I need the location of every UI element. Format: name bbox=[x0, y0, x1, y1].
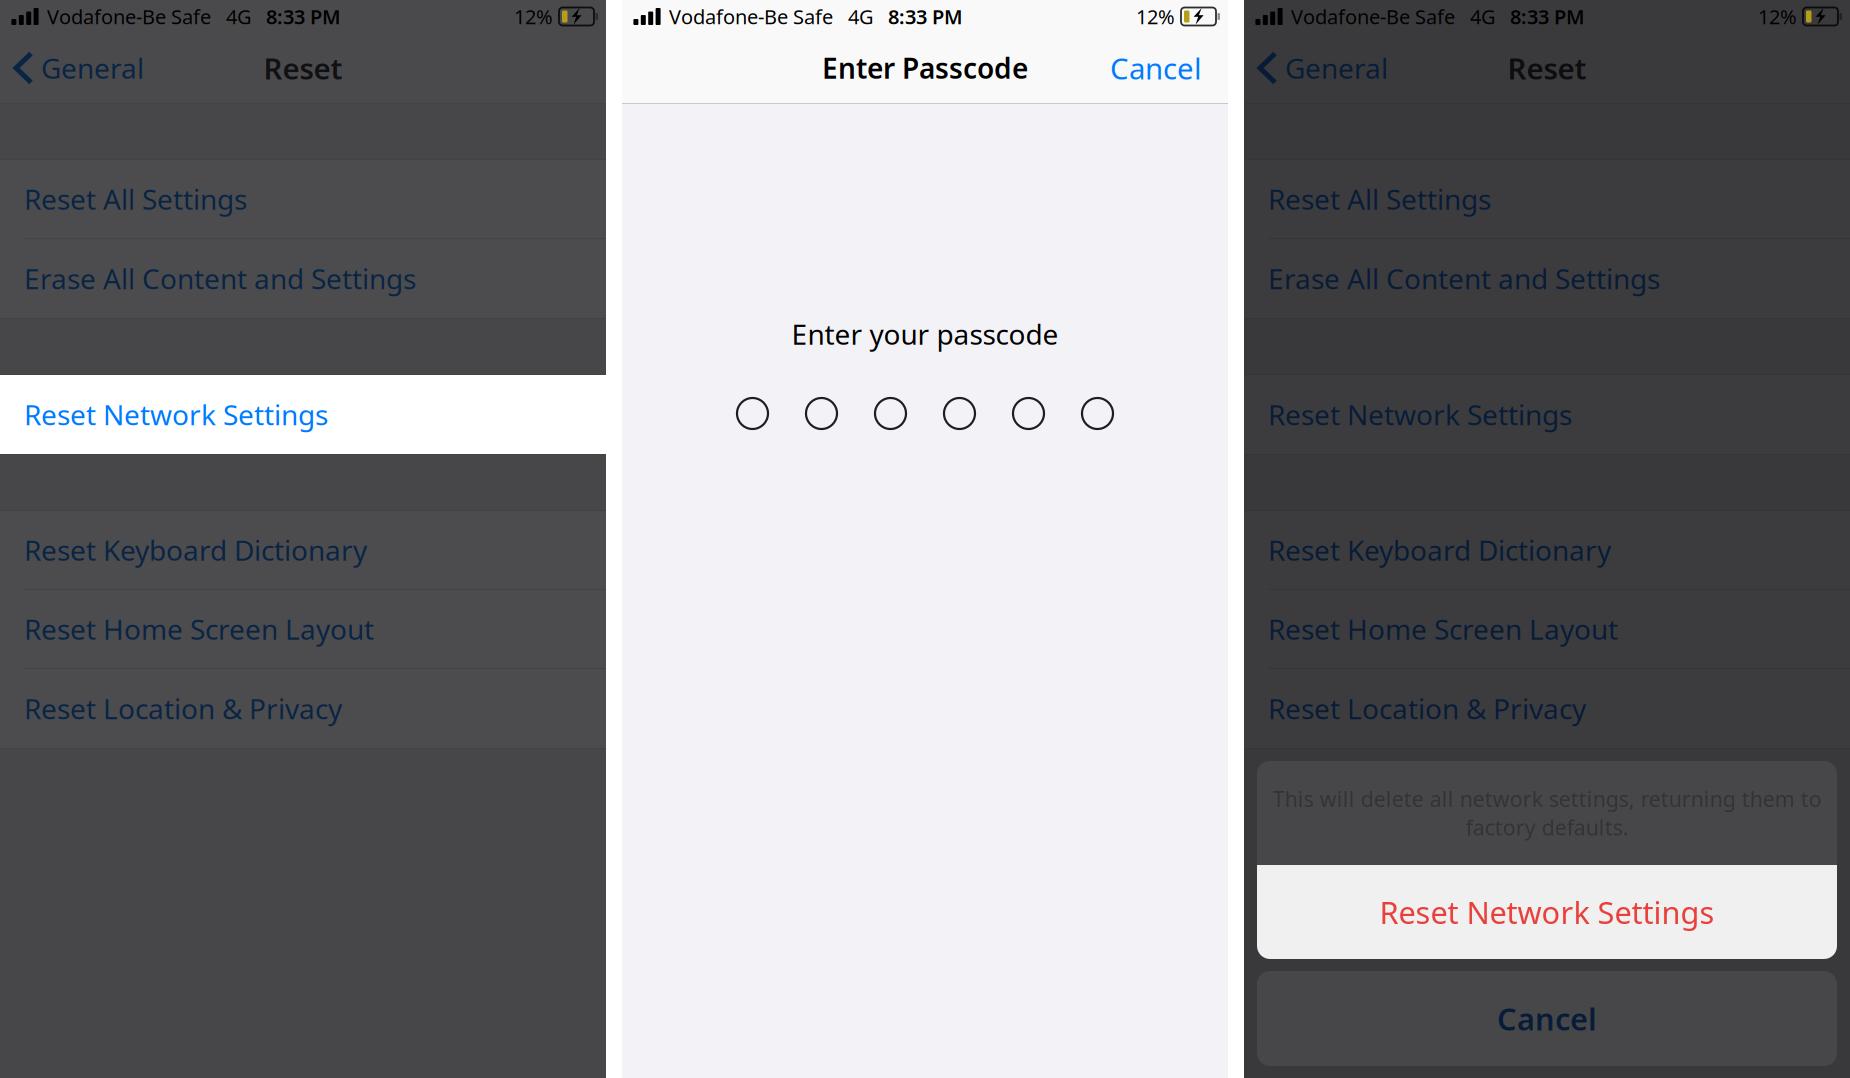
button[interactable]: Cancel bbox=[1110, 33, 1228, 103]
button[interactable]: Cancel bbox=[1257, 971, 1837, 1066]
staticText: Reset Location & Privacy bbox=[24, 690, 342, 727]
staticText: Reset Home Screen Layout bbox=[24, 610, 374, 648]
staticText: Reset Home Screen Layout bbox=[1268, 610, 1618, 648]
staticText: General bbox=[1285, 49, 1388, 87]
staticText: Vodafone-Be Safe bbox=[47, 3, 211, 30]
button[interactable]: Reset Network Settings bbox=[0, 375, 606, 454]
staticText: 4G bbox=[226, 3, 252, 30]
button[interactable]: Back to General bbox=[0, 33, 144, 103]
staticText: 8:33 PM bbox=[266, 3, 341, 30]
button[interactable]: Reset Network Settings bbox=[1257, 865, 1837, 959]
staticText: Reset Keyboard Dictionary bbox=[24, 531, 367, 569]
staticText: Vodafone-Be Safe bbox=[669, 3, 833, 30]
staticText: Erase All Content and Settings bbox=[1268, 260, 1660, 297]
staticText: Reset All Settings bbox=[1268, 180, 1491, 218]
staticText: Reset bbox=[1507, 48, 1586, 87]
staticText: Enter Passcode bbox=[822, 49, 1028, 87]
button[interactable]: Reset Home Screen Layout bbox=[1244, 590, 1850, 669]
button[interactable]: Reset Home Screen Layout bbox=[0, 590, 606, 669]
staticText: 12% bbox=[514, 3, 553, 30]
button[interactable]: Erase All Content and Settings bbox=[0, 239, 606, 318]
button[interactable]: Reset Location & Privacy bbox=[0, 669, 606, 748]
staticText: Reset All Settings bbox=[24, 180, 247, 218]
staticText: Reset bbox=[263, 48, 342, 87]
button[interactable]: Reset Network Settings bbox=[1244, 375, 1850, 454]
staticText: Cancel bbox=[1497, 998, 1597, 1039]
button[interactable]: Reset All Settings bbox=[0, 160, 606, 239]
button[interactable]: Reset Keyboard Dictionary bbox=[0, 511, 606, 590]
staticText: Reset Network Settings bbox=[1268, 396, 1572, 433]
staticText: General bbox=[41, 49, 144, 87]
staticText: Erase All Content and Settings bbox=[24, 260, 416, 297]
staticText: This will delete all network settings, r… bbox=[1272, 785, 1821, 841]
staticText: 4G bbox=[1470, 3, 1496, 30]
staticText: 12% bbox=[1136, 3, 1175, 30]
staticText: Reset Keyboard Dictionary bbox=[1268, 531, 1611, 569]
button[interactable]: Erase All Content and Settings bbox=[1244, 239, 1850, 318]
button[interactable]: Reset All Settings bbox=[1244, 160, 1850, 239]
staticText: 8:33 PM bbox=[1510, 3, 1585, 30]
staticText: Enter your passcode bbox=[791, 315, 1058, 353]
staticText: Reset Location & Privacy bbox=[1268, 690, 1586, 727]
staticText: 4G bbox=[848, 3, 874, 30]
button[interactable]: Reset Location & Privacy bbox=[1244, 669, 1850, 748]
staticText: Reset Network Settings bbox=[1379, 892, 1714, 932]
staticText: 12% bbox=[1758, 3, 1797, 30]
staticText: Vodafone-Be Safe bbox=[1291, 3, 1455, 30]
staticText: 8:33 PM bbox=[888, 3, 963, 30]
button[interactable]: Back to General bbox=[1244, 33, 1388, 103]
staticText: Cancel bbox=[1110, 48, 1202, 87]
button[interactable]: Reset Keyboard Dictionary bbox=[1244, 511, 1850, 590]
staticText: Reset Network Settings bbox=[24, 396, 328, 433]
